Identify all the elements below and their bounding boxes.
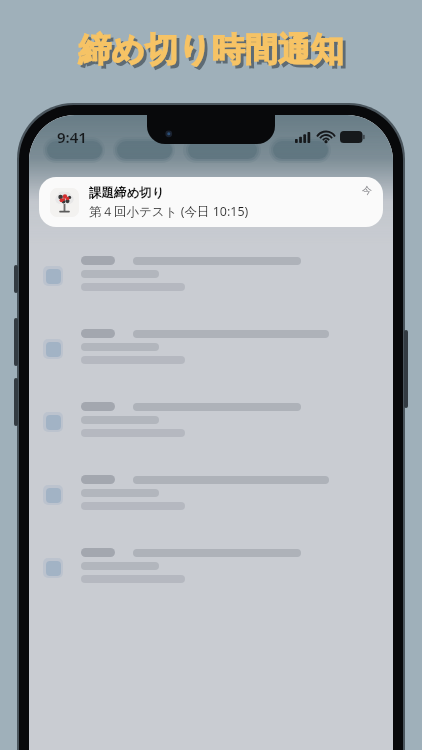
staticText: 今 xyxy=(362,184,372,197)
button[interactable] xyxy=(29,175,393,248)
button[interactable]: 課題締め切り xyxy=(39,177,383,227)
button[interactable] xyxy=(29,394,393,467)
staticText: 9:41 xyxy=(57,127,87,147)
button[interactable] xyxy=(29,467,393,540)
staticText: 第４回小テスト (今日 10:15) xyxy=(89,203,249,220)
staticText: 締め切り時間通知 xyxy=(78,29,344,71)
button[interactable] xyxy=(29,248,393,321)
button[interactable] xyxy=(29,321,393,394)
staticText: 締め切り時間通知 xyxy=(81,32,347,74)
button[interactable] xyxy=(29,540,393,613)
staticText: 課題締め切り xyxy=(89,185,165,201)
